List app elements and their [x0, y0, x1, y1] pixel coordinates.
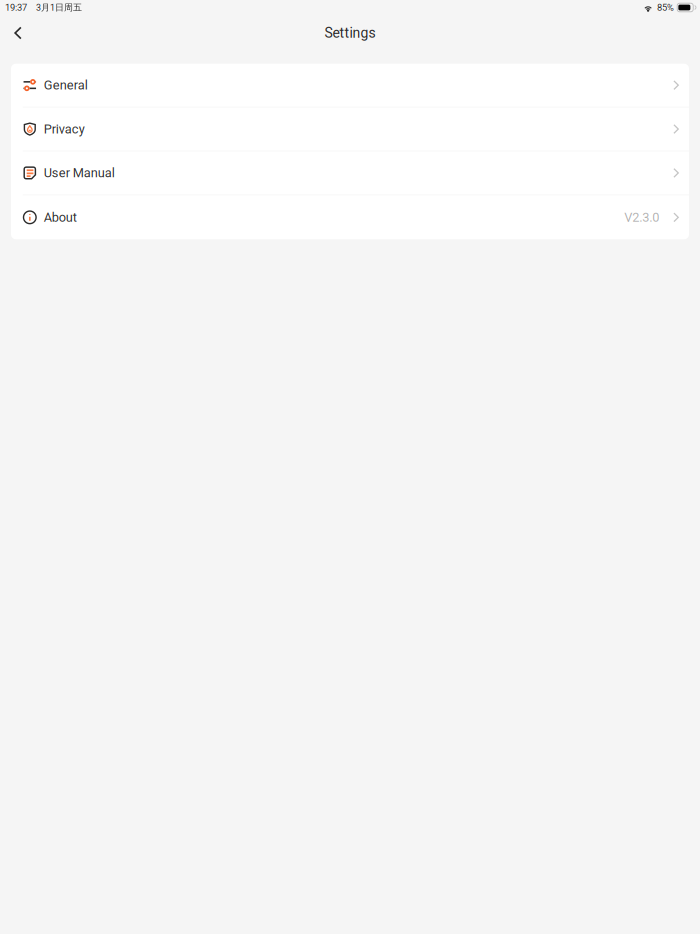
staticText: Privacy — [44, 121, 85, 136]
staticText: General — [44, 78, 88, 93]
staticText: V2.3.0 — [624, 210, 659, 225]
staticText: 19:37 — [5, 2, 27, 13]
button[interactable]: General — [11, 64, 689, 108]
staticText: Settings — [324, 25, 375, 41]
staticText: About — [44, 210, 77, 225]
staticText: 3月1日周五 — [36, 2, 82, 13]
button[interactable]: Back — [3, 18, 33, 48]
button[interactable]: User Manual — [11, 151, 689, 195]
staticText: 85% — [657, 2, 674, 13]
button[interactable]: Privacy — [11, 108, 689, 151]
button[interactable]: About — [11, 195, 689, 239]
staticText: User Manual — [44, 165, 115, 180]
